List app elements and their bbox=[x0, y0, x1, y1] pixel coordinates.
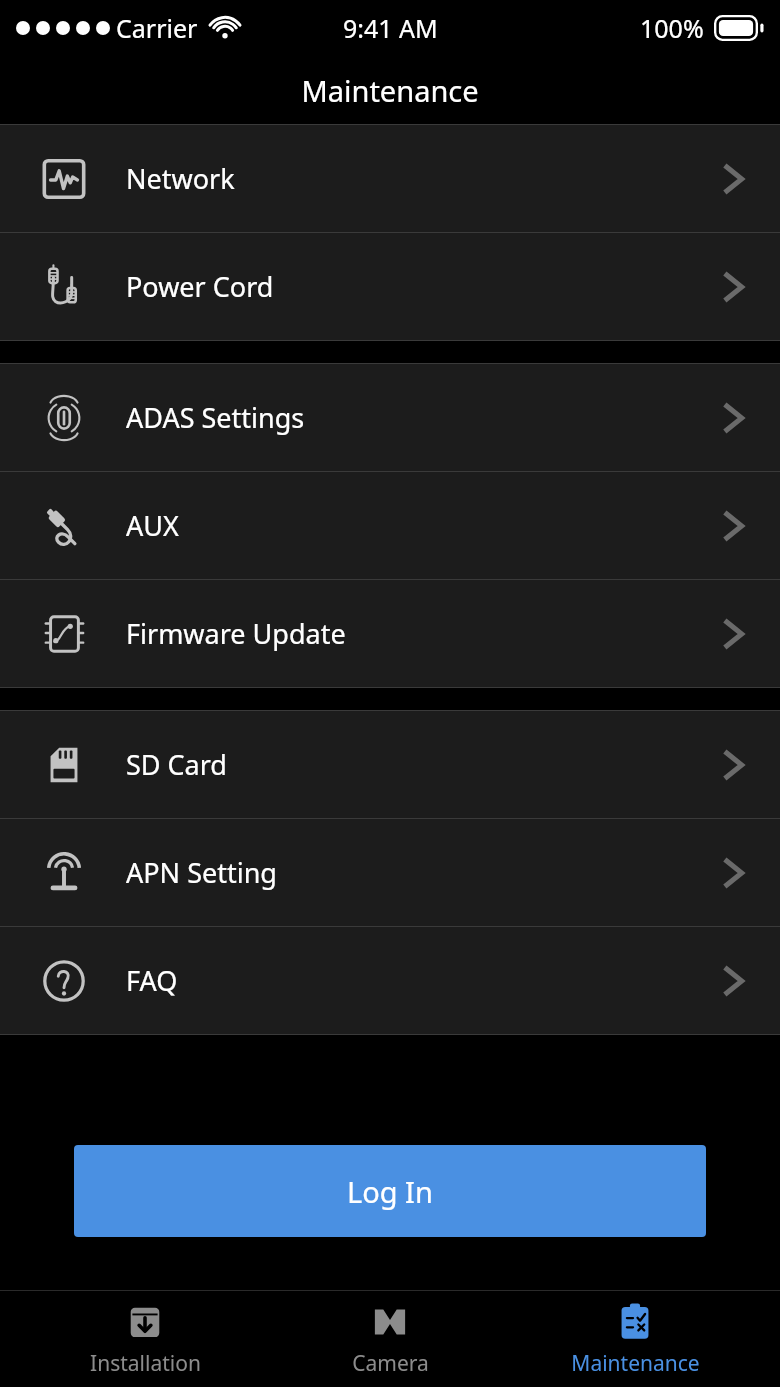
other: Installation bbox=[124, 1301, 166, 1343]
button[interactable]: Installation bbox=[45, 1295, 245, 1384]
button[interactable]: AUX bbox=[0, 472, 780, 579]
staticText: ADAS Settings bbox=[126, 399, 305, 436]
staticText: APN Setting bbox=[126, 854, 277, 891]
staticText: SD Card bbox=[126, 746, 227, 783]
button[interactable]: Network bbox=[0, 125, 780, 232]
other: Maintenance bbox=[614, 1301, 656, 1343]
staticText: Power Cord bbox=[126, 268, 274, 305]
staticText: Log In bbox=[347, 1172, 433, 1211]
button[interactable]: SD Card bbox=[0, 711, 780, 818]
staticText: Maintenance bbox=[301, 71, 479, 110]
button[interactable]: Log In bbox=[74, 1145, 706, 1237]
staticText: Maintenance bbox=[571, 1349, 700, 1378]
staticText: Firmware Update bbox=[126, 615, 346, 652]
button[interactable]: Maintenance bbox=[535, 1295, 735, 1384]
staticText: Carrier bbox=[116, 11, 198, 45]
staticText: Camera bbox=[352, 1349, 429, 1378]
staticText: FAQ bbox=[126, 962, 178, 999]
button[interactable]: ADAS Settings bbox=[0, 364, 780, 471]
staticText: 100% bbox=[640, 11, 704, 45]
button[interactable]: APN Setting bbox=[0, 819, 780, 926]
staticText: UpdateStar.com bbox=[248, 663, 532, 715]
button[interactable]: Camera bbox=[290, 1295, 490, 1384]
staticText: Network bbox=[126, 160, 235, 197]
staticText: Installation bbox=[90, 1349, 201, 1378]
button[interactable]: Power Cord bbox=[0, 233, 780, 340]
button[interactable]: Firmware Update bbox=[0, 580, 780, 687]
other: Camera bbox=[369, 1301, 411, 1343]
staticText: 9:41 AM bbox=[343, 11, 438, 45]
staticText: AUX bbox=[126, 507, 179, 544]
button[interactable]: FAQ bbox=[0, 927, 780, 1034]
